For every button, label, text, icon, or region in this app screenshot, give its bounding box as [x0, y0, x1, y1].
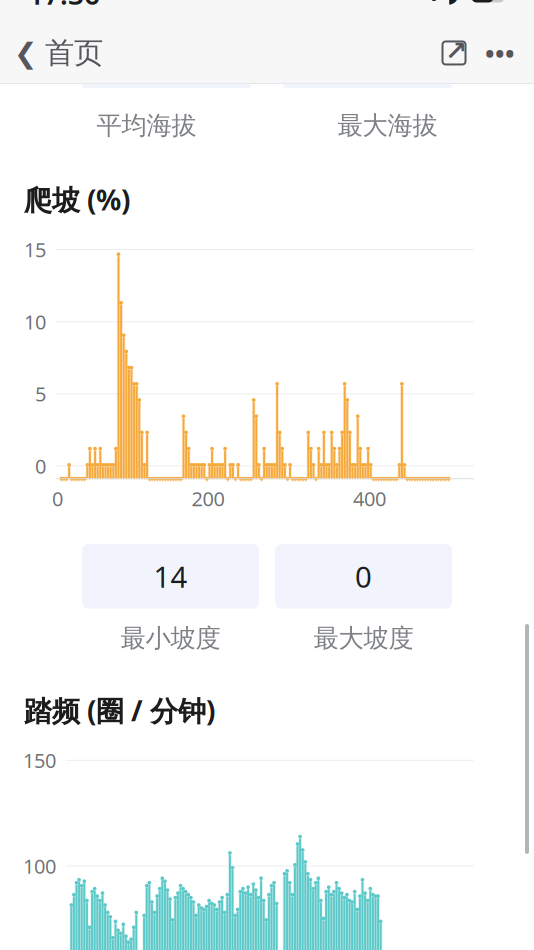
- button[interactable]: 0: [267, 544, 460, 654]
- staticText: 10: [24, 308, 46, 335]
- staticText: 17:36: [28, 0, 100, 13]
- staticText: 5: [35, 380, 46, 407]
- button[interactable]: 更多: [476, 31, 524, 75]
- staticText: 0: [35, 453, 46, 479]
- button[interactable]: ❮: [0, 27, 103, 79]
- staticText: 最小坡度: [120, 623, 220, 654]
- staticText: ❮: [14, 37, 37, 69]
- staticText: 200: [191, 485, 224, 512]
- button[interactable]: 分享: [432, 31, 476, 75]
- button[interactable]: 14: [74, 544, 267, 654]
- staticText: 400: [353, 485, 386, 512]
- staticText: 100: [23, 853, 56, 879]
- staticText: 首页: [45, 35, 103, 71]
- staticText: 最大海拔: [337, 110, 437, 141]
- staticText: 0: [52, 485, 63, 512]
- staticText: 爬坡 (%): [24, 181, 130, 218]
- staticText: 150: [23, 747, 56, 774]
- staticText: 平均海拔: [96, 110, 196, 141]
- staticText: 最大坡度: [313, 623, 413, 654]
- staticText: 0: [355, 557, 372, 596]
- staticText: 15: [24, 236, 46, 263]
- staticText: 61: [474, 0, 490, 4]
- staticText: 踏频 (圈 / 分钟): [24, 692, 215, 729]
- staticText: ◗: [447, 0, 459, 7]
- staticText: 14: [153, 557, 187, 596]
- staticText: •••: [485, 36, 515, 70]
- staticText: ↗: [445, 36, 467, 66]
